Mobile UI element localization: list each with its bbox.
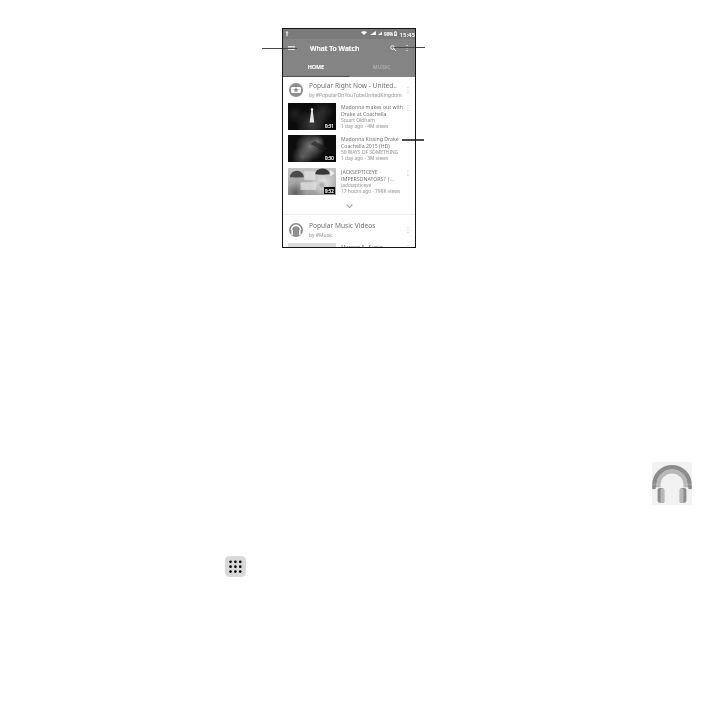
staticText: JACKSEPTICEYE xyxy=(341,168,378,175)
button[interactable]: More xyxy=(403,135,413,145)
staticText: 17 hours ago · 798K views xyxy=(341,188,401,195)
button[interactable]: More xyxy=(403,243,413,247)
staticText: MUSIC xyxy=(373,64,391,71)
staticText: 0:30 xyxy=(325,155,334,161)
staticText: What To Watch xyxy=(310,44,360,53)
button[interactable]: More options xyxy=(401,42,413,54)
button[interactable]: Show more xyxy=(283,199,415,213)
button[interactable]: 0:31 xyxy=(283,103,415,131)
staticText: jacksepticeye xyxy=(341,182,372,189)
staticText: 1 day ago · 3M views xyxy=(341,155,389,162)
staticText: 96% xyxy=(384,31,394,37)
staticText: Drake at Coachella xyxy=(341,110,387,117)
button[interactable]: Navigation menu xyxy=(285,42,297,54)
button[interactable]: Play Music xyxy=(652,462,692,505)
staticText: Madonna makes out with xyxy=(341,103,403,110)
staticText: 0:31 xyxy=(325,123,334,129)
button[interactable]: More xyxy=(403,85,413,95)
staticText: Madonna Kissing Drake xyxy=(341,135,399,142)
staticText: Stuart Oldham xyxy=(341,117,375,124)
button[interactable]: Apps xyxy=(225,556,246,577)
staticText: Maroon 5 - Sugar xyxy=(341,243,384,247)
staticText: HOME xyxy=(308,64,325,71)
staticText: 50 WAYS OF SOMETHING xyxy=(341,149,399,156)
button[interactable]: More xyxy=(403,103,413,113)
staticText: by #PopularOnYouTubeUnitedKingdom xyxy=(309,92,402,99)
button[interactable]: Popular Right Now - United.. xyxy=(283,77,415,102)
button[interactable]: Maroon 5 - Sugar xyxy=(283,243,415,247)
button[interactable]: MUSIC xyxy=(349,57,415,77)
staticText: 15:45 xyxy=(400,31,415,38)
button[interactable]: Popular Music Videos xyxy=(283,217,415,242)
button[interactable]: More xyxy=(403,168,413,178)
staticText: 9:52 xyxy=(325,188,334,194)
staticText: Popular Music Videos xyxy=(309,221,376,230)
button[interactable]: 9:52 xyxy=(283,168,415,196)
staticText: by #Music xyxy=(309,232,333,239)
staticText: Coachella 2015 (HD) xyxy=(341,142,390,149)
button[interactable]: HOME xyxy=(283,57,349,77)
staticText: Popular Right Now - United.. xyxy=(309,81,397,90)
button[interactable]: 0:30 xyxy=(283,135,415,163)
button[interactable]: Search xyxy=(387,42,399,54)
staticText: IMPERSONATORS? |... xyxy=(341,175,395,182)
button[interactable]: More xyxy=(403,225,413,235)
staticText: 1 day ago · 4M views xyxy=(341,123,389,130)
